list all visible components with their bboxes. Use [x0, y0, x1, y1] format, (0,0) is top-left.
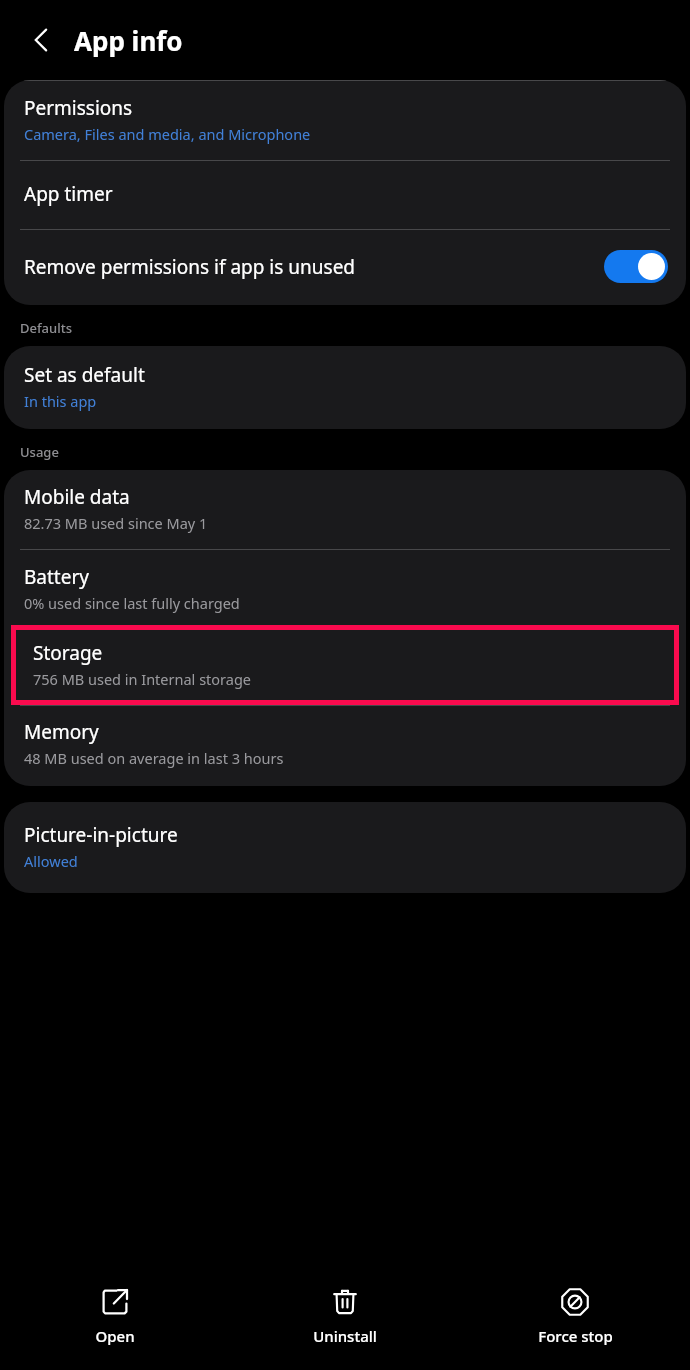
staticText: Open [95, 1326, 135, 1346]
staticText: Allowed [24, 851, 78, 871]
button[interactable]: Storage [13, 627, 677, 703]
staticText: Usage [20, 443, 59, 461]
button[interactable]: Permissions [4, 81, 686, 160]
staticText: Mobile data [24, 484, 130, 510]
staticText: 0% used since last fully charged [24, 593, 240, 613]
button[interactable]: Force stop [460, 1277, 690, 1356]
staticText: Camera, Files and media, and Microphone [24, 124, 311, 144]
staticText: Remove permissions if app is unused [24, 254, 356, 280]
staticText: Permissions [24, 95, 133, 121]
button[interactable]: Back [18, 16, 66, 64]
button[interactable]: Remove permissions if app is unused [4, 230, 686, 305]
staticText: 48 MB used on average in last 3 hours [24, 748, 284, 768]
button[interactable]: App timer [4, 161, 686, 229]
button[interactable]: Picture-in-picture [4, 802, 686, 893]
staticText: 756 MB used in Internal storage [33, 669, 252, 689]
staticText: Defaults [20, 319, 73, 337]
staticText: Force stop [538, 1326, 613, 1346]
staticText: Storage [33, 640, 103, 666]
staticText: In this app [24, 391, 97, 411]
button[interactable]: Mobile data [4, 470, 686, 549]
button[interactable]: Uninstall [230, 1277, 460, 1356]
staticText: App info [74, 23, 183, 58]
staticText: 82.73 MB used since May 1 [24, 513, 208, 533]
staticText: App timer [24, 181, 113, 207]
staticText: Battery [24, 564, 89, 590]
staticText: Memory [24, 719, 99, 745]
button[interactable]: Remove permissions toggle [604, 250, 668, 283]
button[interactable]: Memory [4, 706, 686, 786]
button[interactable]: Open [0, 1277, 230, 1356]
staticText: Uninstall [313, 1326, 377, 1346]
button[interactable]: Battery [4, 550, 686, 625]
staticText: Set as default [24, 362, 145, 388]
staticText: Picture-in-picture [24, 822, 178, 848]
button[interactable]: Set as default [4, 346, 686, 429]
